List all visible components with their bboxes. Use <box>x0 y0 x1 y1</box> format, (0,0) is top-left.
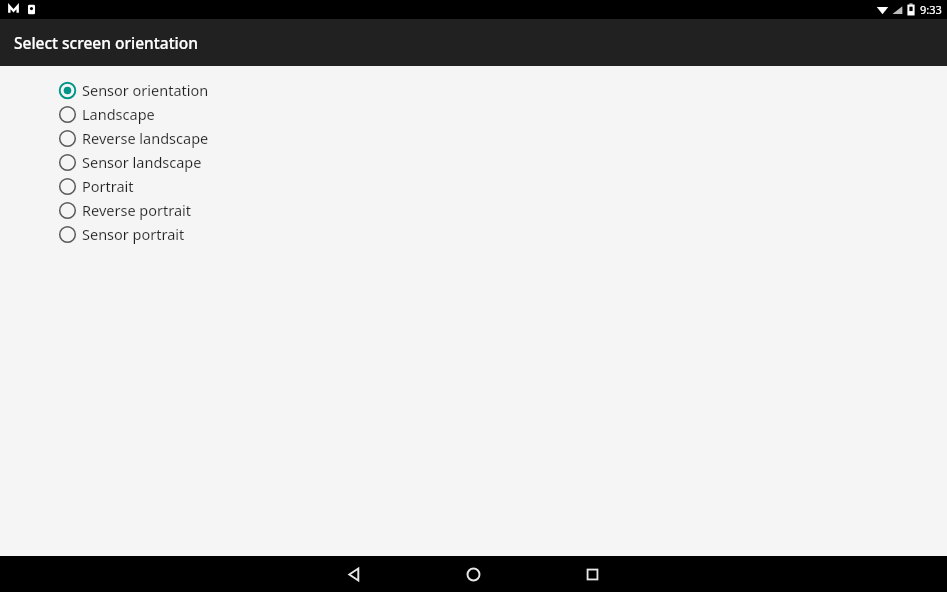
button[interactable]: Reverse portrait <box>0 198 947 222</box>
staticText: Sensor orientation <box>82 80 209 100</box>
staticText: Landscape <box>82 104 155 124</box>
button[interactable]: Sensor orientation <box>0 78 947 102</box>
staticText: Sensor landscape <box>82 152 202 172</box>
button[interactable]: Portrait <box>0 174 947 198</box>
button[interactable]: Reverse landscape <box>0 126 947 150</box>
staticText: Reverse portrait <box>82 200 192 220</box>
button[interactable]: Sensor portrait <box>0 222 947 246</box>
staticText: 9:33 <box>920 2 942 17</box>
button[interactable]: Landscape <box>0 102 947 126</box>
staticText: Select screen orientation <box>14 32 198 53</box>
staticText: Portrait <box>82 176 134 196</box>
button[interactable]: Back <box>333 556 373 592</box>
button[interactable]: Sensor landscape <box>0 150 947 174</box>
staticText: Reverse landscape <box>82 128 209 148</box>
button[interactable]: Recent apps <box>572 556 612 592</box>
button[interactable]: Home <box>453 556 493 592</box>
staticText: Sensor portrait <box>82 224 185 244</box>
